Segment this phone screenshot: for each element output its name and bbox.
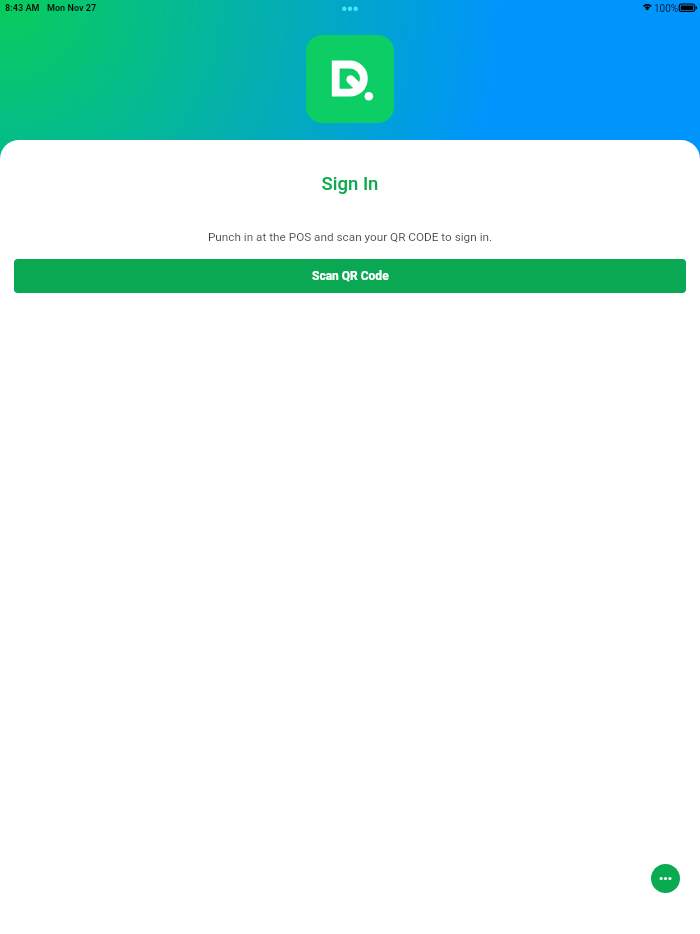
staticText: Punch in at the POS and scan your QR COD… — [0, 230, 700, 244]
staticText: Mon Nov 27 — [47, 3, 97, 14]
staticText: Sign In — [0, 173, 700, 195]
staticText: Scan QR Code — [312, 269, 389, 283]
button[interactable]: More options — [651, 864, 680, 893]
staticText: 100% — [654, 3, 679, 15]
button[interactable]: Scan QR Code — [14, 259, 686, 293]
staticText: 8:43 AM — [5, 3, 40, 14]
